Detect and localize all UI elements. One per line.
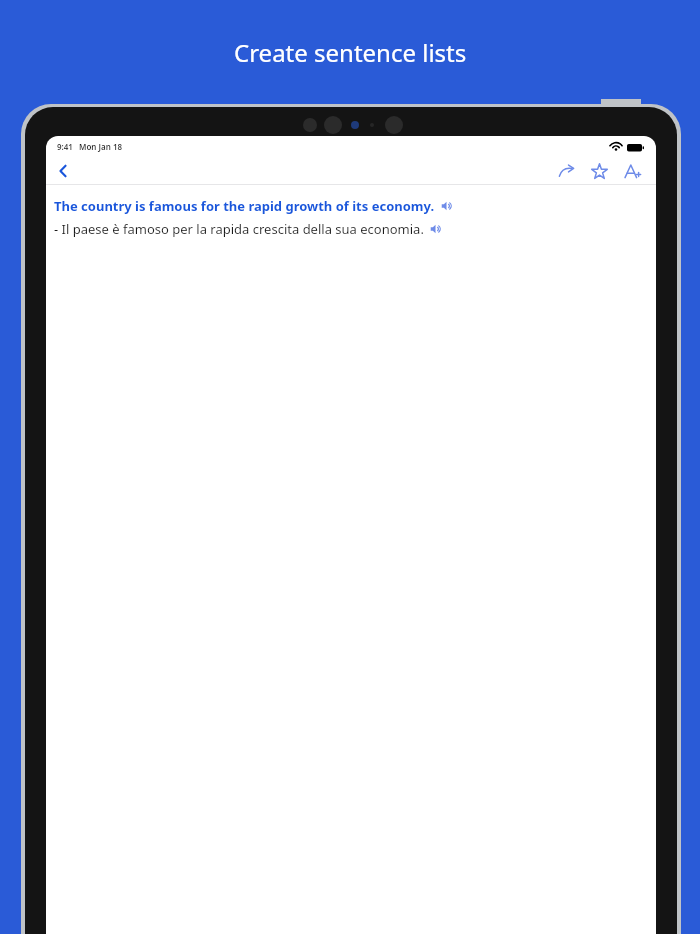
- button[interactable]: Text size: [620, 159, 644, 183]
- button[interactable]: Play audio: [440, 199, 454, 213]
- button[interactable]: Favorite: [587, 159, 611, 183]
- staticText: Create sentence lists: [234, 36, 467, 69]
- button[interactable]: The country is famous for the rapid grow…: [46, 197, 656, 238]
- staticText: - Il paese è famoso per la rapida cresci…: [54, 220, 424, 238]
- staticText: Mon Jan 18: [79, 141, 123, 152]
- button[interactable]: Back: [46, 157, 80, 184]
- button[interactable]: Share: [554, 159, 578, 183]
- staticText: The country is famous for the rapid grow…: [54, 197, 435, 215]
- button[interactable]: Play audio: [429, 222, 443, 236]
- staticText: 9:41: [57, 141, 73, 152]
